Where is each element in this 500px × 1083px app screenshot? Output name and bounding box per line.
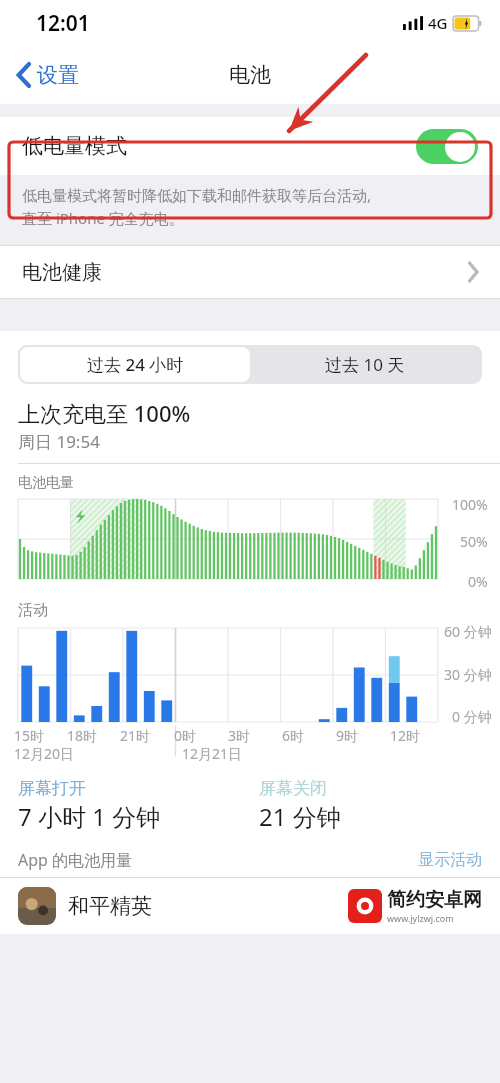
staticText: 0时 [174,726,197,745]
staticText: 低电量模式 [22,133,127,159]
button[interactable]: 和平精英 [0,878,500,934]
staticText: 屏幕打开 [18,778,86,799]
staticText: 屏幕关闭 [259,778,327,799]
button[interactable]: 过去 10 天 [250,347,480,382]
staticText: App 的电池用量 [18,849,133,871]
staticText: 和平精英 [68,893,152,919]
other: 低电量模式开关 [416,129,478,164]
staticText: 电池电量 [18,474,74,492]
staticText: 电池健康 [22,260,102,285]
button[interactable]: 电池健康 [0,246,500,298]
staticText: 4G [428,13,448,33]
staticText: 9时 [336,726,359,745]
staticText: 12:01 [36,9,90,38]
staticText: 0% [468,572,488,591]
staticText: 30 分钟 [444,665,492,684]
staticText: 低电量模式将暂时降低如下载和邮件获取等后台活动, [22,185,372,205]
button[interactable]: 低电量模式 [0,117,500,175]
staticText: 上次充电至 100% [18,398,191,428]
staticText: 6时 [282,726,305,745]
staticText: 过去 10 天 [325,353,405,376]
staticText: 3时 [228,726,251,745]
staticText: 过去 24 小时 [87,353,184,376]
button[interactable]: 过去 24 小时 [20,347,250,382]
staticText: 7 小时 1 分钟 [18,800,161,833]
staticText: www.jylzwj.com [387,912,454,924]
staticText: 60 分钟 [444,622,492,641]
staticText: 电池 [229,62,271,88]
staticText: 直至 iPhone 完全充电。 [22,208,184,228]
staticText: 12月21日 [182,744,243,763]
staticText: 简约安卓网 [387,888,482,912]
staticText: 12月20日 [14,744,75,763]
staticText: 周日 19:54 [18,430,100,453]
staticText: 显示活动 [418,850,482,870]
staticText: 21时 [120,726,151,745]
staticText: 50% [460,532,488,551]
staticText: 活动 [18,601,48,620]
button[interactable]: 显示活动 [418,850,482,870]
staticText: 18时 [67,726,98,745]
button[interactable]: 设置 [12,56,85,94]
staticText: 15时 [14,726,45,745]
staticText: 100% [452,495,488,514]
staticText: 21 分钟 [259,800,341,833]
staticText: 12时 [390,726,421,745]
staticText: 0 分钟 [452,707,492,726]
staticText: 设置 [37,62,79,88]
